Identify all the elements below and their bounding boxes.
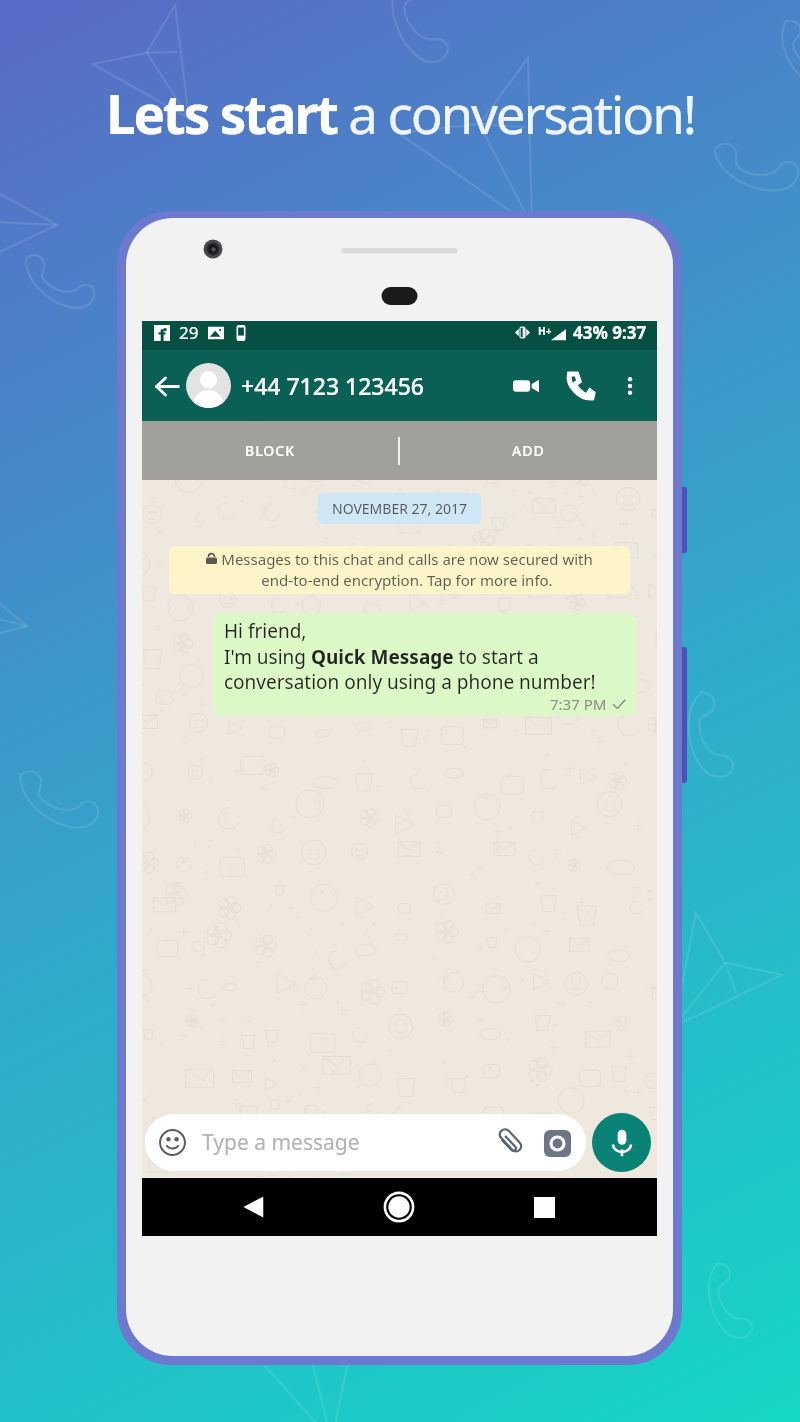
staticText: 43% 9:37 <box>573 321 647 344</box>
staticText: 29 <box>179 321 199 344</box>
button[interactable]: Back <box>150 369 184 403</box>
button[interactable]: Video call <box>507 367 545 405</box>
staticText: Type a message <box>202 1128 360 1157</box>
button[interactable]: Camera <box>542 1128 572 1158</box>
button[interactable]: Hi friend, I'm using Quick Message to st… <box>213 613 636 716</box>
button[interactable]: Home <box>366 1178 431 1236</box>
staticText: NOVEMBER 27, 2017 <box>332 499 467 518</box>
button[interactable]: Messages to this chat and calls are now … <box>169 546 630 594</box>
staticText: ADD <box>512 441 545 460</box>
staticText: Hi friend, I'm using Quick Message to st… <box>224 618 596 694</box>
staticText: 7:37 PM <box>550 694 607 714</box>
staticText: Messages to this chat and calls are now … <box>221 549 593 591</box>
button[interactable]: BLOCK <box>142 421 398 480</box>
button[interactable]: Record voice message <box>592 1113 651 1172</box>
staticText: BLOCK <box>245 441 296 460</box>
staticText: Lets start a conversation! <box>106 77 695 149</box>
staticText: H+ <box>538 324 552 338</box>
button[interactable]: Call <box>561 367 599 405</box>
button[interactable]: Back <box>142 1178 366 1236</box>
button[interactable]: Attach <box>495 1128 525 1158</box>
button[interactable]: Type a message <box>145 1114 586 1171</box>
button[interactable]: Recents <box>431 1178 657 1236</box>
button[interactable]: ADD <box>400 421 657 480</box>
button[interactable]: More options <box>613 369 647 403</box>
staticText: +44 7123 123456 <box>241 370 424 401</box>
